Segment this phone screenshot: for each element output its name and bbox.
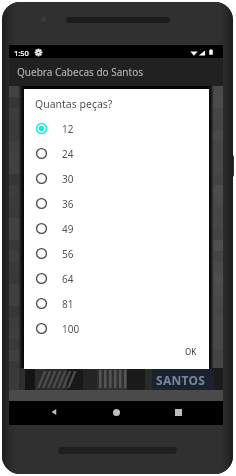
staticText: 56 (62, 247, 74, 261)
button[interactable]: 100 (24, 316, 209, 341)
staticText: 30 (62, 172, 74, 186)
staticText: 12 (62, 122, 74, 136)
staticText: 36 (62, 197, 74, 211)
button[interactable]: Back (43, 401, 65, 423)
staticText: 1:50 (14, 48, 29, 58)
button[interactable]: 49 (24, 216, 209, 241)
button[interactable]: 12 (24, 116, 209, 141)
staticText: 64 (62, 272, 74, 286)
button[interactable]: Home (105, 401, 127, 423)
button[interactable]: 56 (24, 241, 209, 266)
button[interactable]: 64 (24, 266, 209, 291)
button[interactable]: OK (173, 342, 209, 361)
staticText: SANTOS (156, 372, 206, 388)
staticText: 81 (62, 297, 74, 311)
button[interactable]: 30 (24, 166, 209, 191)
staticText: OK (185, 346, 197, 357)
button[interactable]: 36 (24, 191, 209, 216)
button[interactable]: Recents (167, 401, 189, 423)
staticText: Quebra Cabecas do Santos (17, 65, 143, 79)
staticText: 49 (62, 222, 74, 236)
staticText: 24 (62, 147, 74, 161)
staticText: Quantas peças? (35, 97, 113, 111)
staticText: 100 (62, 322, 80, 336)
button[interactable]: 81 (24, 291, 209, 316)
button[interactable]: 24 (24, 141, 209, 166)
